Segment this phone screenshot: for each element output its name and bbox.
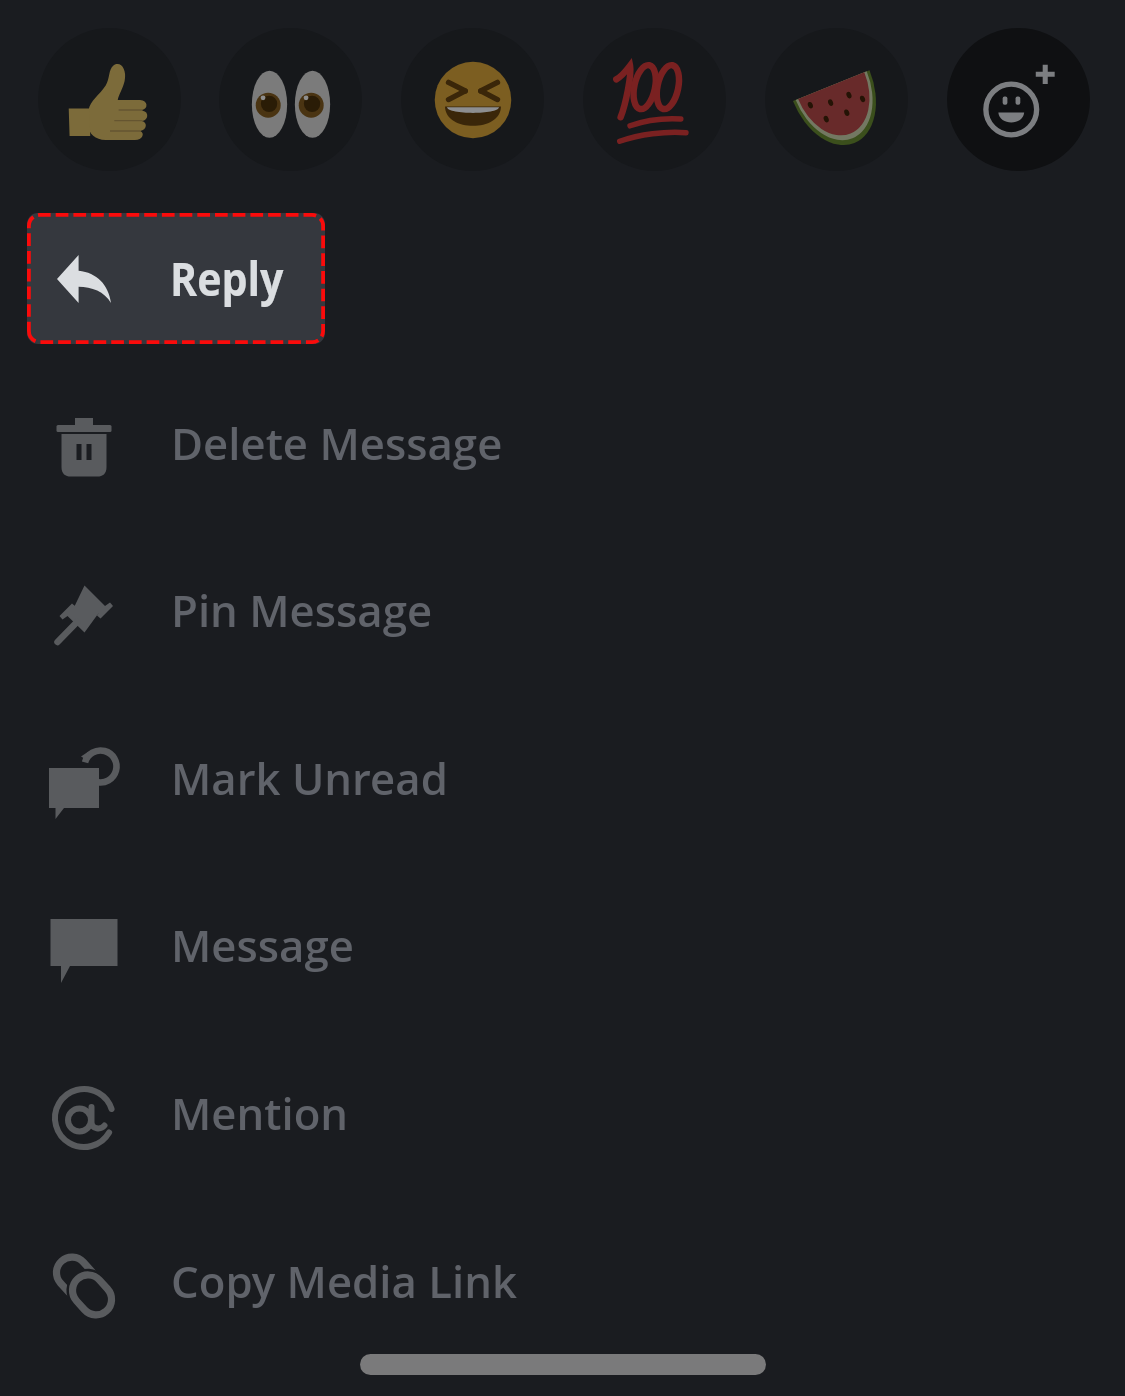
button[interactable]: Add reaction [947, 28, 1090, 171]
button[interactable]: 100 [583, 28, 726, 171]
button[interactable]: Eyes [219, 28, 362, 171]
button[interactable]: Watermelon [765, 28, 908, 171]
staticText: Pin Message [171, 581, 432, 640]
button[interactable]: Thumbs up [38, 28, 181, 171]
button[interactable]: Reply [27, 213, 325, 344]
staticText: Copy Media Link [171, 1252, 518, 1311]
staticText: Mark Unread [171, 749, 448, 808]
staticText: Delete Message [171, 414, 503, 473]
staticText: Message [171, 916, 355, 975]
button[interactable]: Message [0, 866, 1125, 1034]
button[interactable]: Pin Message [0, 531, 1125, 699]
button[interactable]: Mention [0, 1034, 1125, 1202]
button[interactable]: Copy Media Link [0, 1202, 1125, 1370]
button[interactable]: Laughing [401, 28, 544, 171]
staticText: Mention [171, 1084, 349, 1143]
button[interactable]: Delete Message [0, 364, 1125, 532]
staticText: Reply [170, 246, 284, 309]
button[interactable]: Mark Unread [0, 699, 1125, 867]
